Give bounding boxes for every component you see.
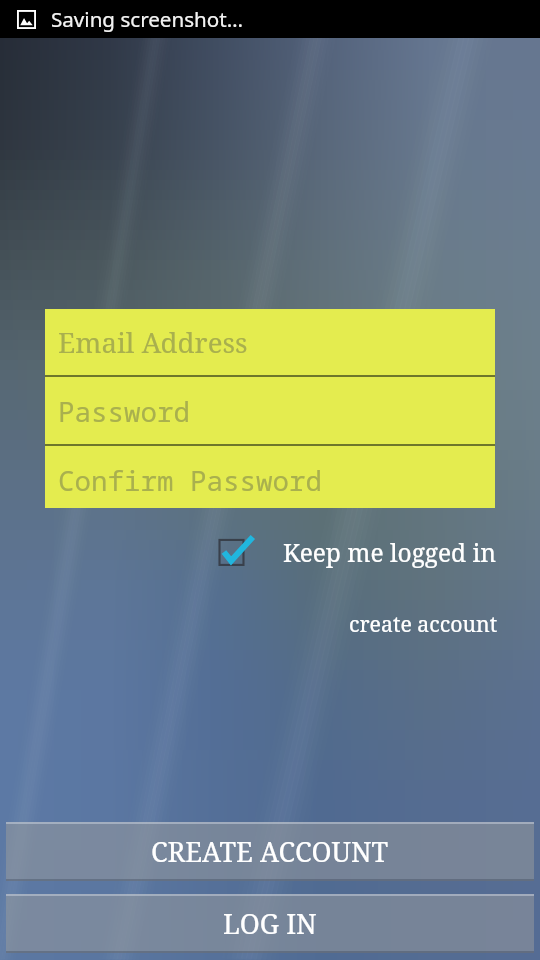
button[interactable]: Password	[45, 377, 495, 444]
button[interactable]: Confirm Password	[45, 446, 495, 508]
staticText: Password	[58, 393, 190, 430]
button[interactable]: Email Address	[45, 309, 495, 375]
staticText: LOG IN	[223, 905, 317, 942]
button[interactable]: CREATE ACCOUNT	[6, 822, 534, 881]
button[interactable]: LOG IN	[6, 894, 534, 953]
staticText: Saving screenshot…	[51, 5, 243, 33]
staticText: Keep me logged in	[283, 536, 497, 569]
staticText: create account	[349, 609, 498, 638]
staticText: CREATE ACCOUNT	[151, 833, 389, 870]
staticText: Confirm Password	[58, 462, 322, 499]
staticText: Email Address	[58, 323, 248, 361]
button[interactable]: create account	[345, 605, 502, 642]
button[interactable]: Keep me logged in	[214, 530, 258, 574]
